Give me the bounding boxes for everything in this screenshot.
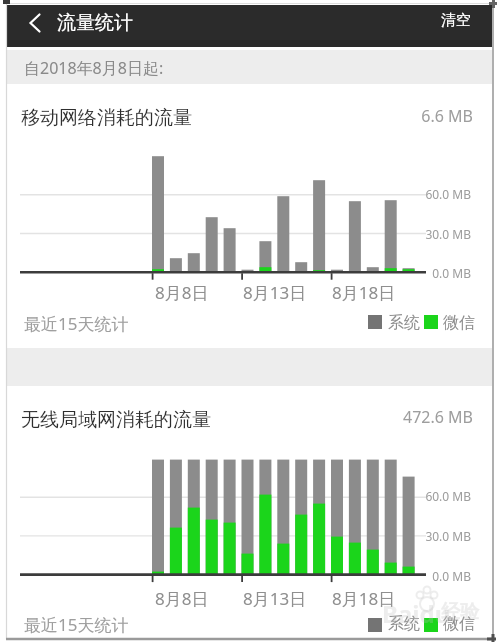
staticText: 30.0 MB <box>271 226 471 242</box>
staticText: 6.6 MB <box>273 105 473 127</box>
staticText: 30.0 MB <box>271 528 471 544</box>
staticText: 移动网络消耗的流量 <box>21 106 192 130</box>
staticText: 8月13日 <box>243 587 307 610</box>
staticText: Baidu <box>382 597 451 630</box>
staticText: 最近15天统计 <box>24 312 129 335</box>
button[interactable] <box>15 5 55 47</box>
staticText: 清空 <box>441 11 471 30</box>
staticText: 经验 <box>441 600 479 624</box>
staticText: 最近15天统计 <box>24 613 129 636</box>
staticText: 无线局域网消耗的流量 <box>21 408 211 432</box>
staticText: 60.0 MB <box>271 186 471 202</box>
staticText: 8月18日 <box>332 587 396 610</box>
staticText: 0.0 MB <box>271 265 471 281</box>
staticText: 微信 <box>443 614 475 634</box>
staticText: 60.0 MB <box>271 488 471 504</box>
staticText: 微信 <box>443 313 475 333</box>
staticText: 流量统计 <box>57 11 133 35</box>
staticText: 系统 <box>388 313 420 333</box>
staticText: 8月13日 <box>243 281 307 304</box>
staticText: 8月8日 <box>155 587 209 610</box>
staticText: 8月8日 <box>155 281 209 304</box>
staticText: 8月18日 <box>332 281 396 304</box>
staticText: 0.0 MB <box>271 568 471 584</box>
button[interactable]: 清空 <box>428 5 492 47</box>
staticText: 系统 <box>388 614 420 634</box>
staticText: 472.6 MB <box>273 406 473 428</box>
staticText: 自2018年8月8日起: <box>24 57 164 79</box>
